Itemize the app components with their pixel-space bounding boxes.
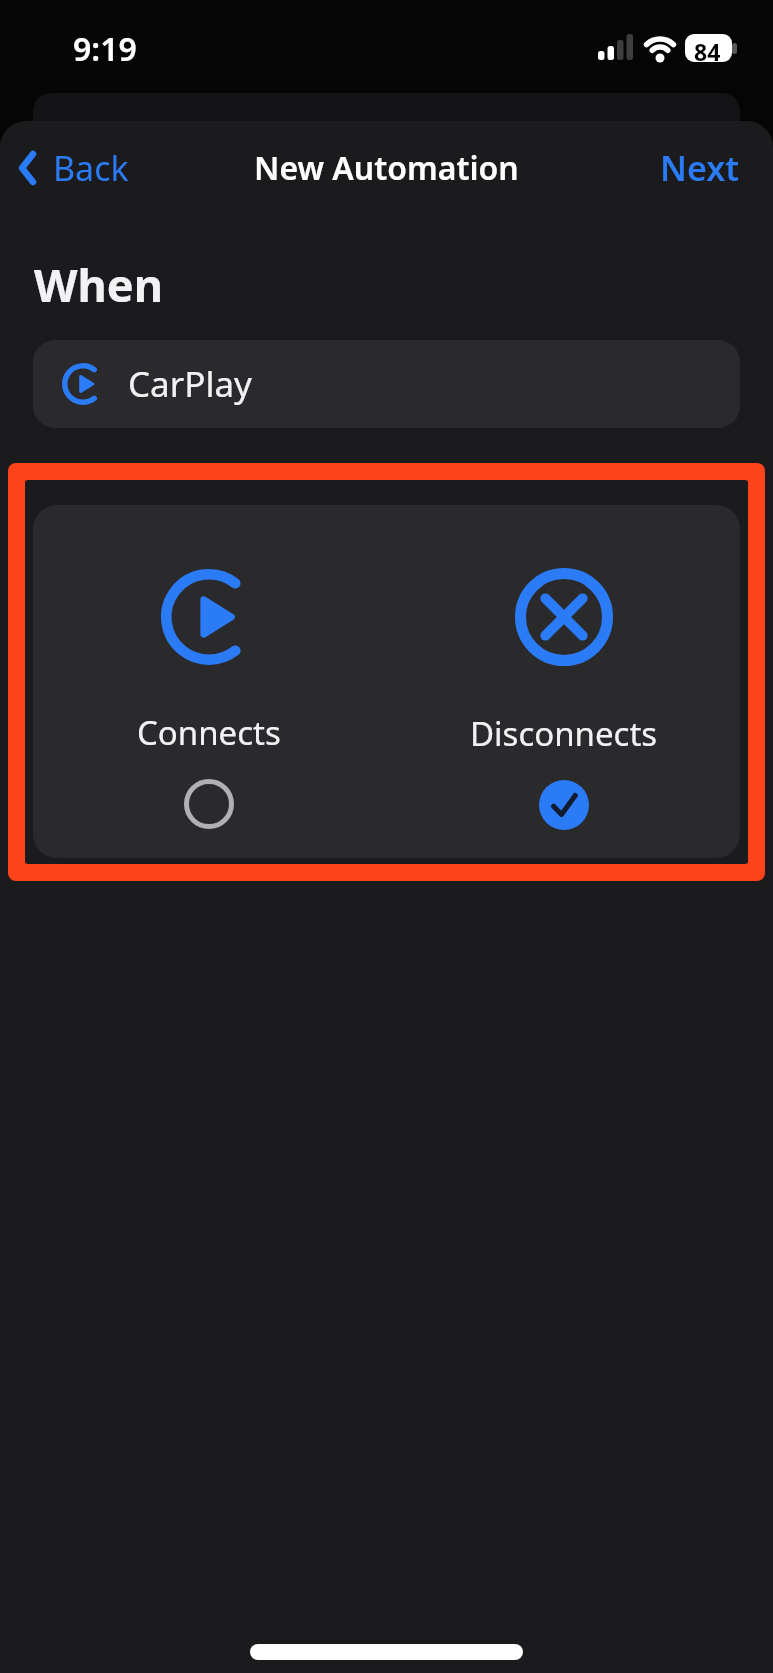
button[interactable]: CarPlay: [33, 340, 740, 428]
button[interactable]: Connects: [39, 505, 379, 858]
staticText: CarPlay: [128, 360, 252, 408]
button[interactable]: Disconnects: [394, 505, 734, 858]
staticText: 9:19: [73, 27, 137, 71]
staticText: Back: [53, 145, 129, 191]
button[interactable]: Back: [14, 140, 129, 196]
staticText: New Automation: [254, 146, 519, 190]
staticText: When: [34, 254, 163, 315]
button[interactable]: Next: [660, 145, 740, 191]
staticText: Next: [660, 145, 740, 191]
staticText: Disconnects: [470, 711, 658, 756]
staticText: 84: [694, 36, 721, 67]
staticText: Connects: [137, 710, 281, 755]
